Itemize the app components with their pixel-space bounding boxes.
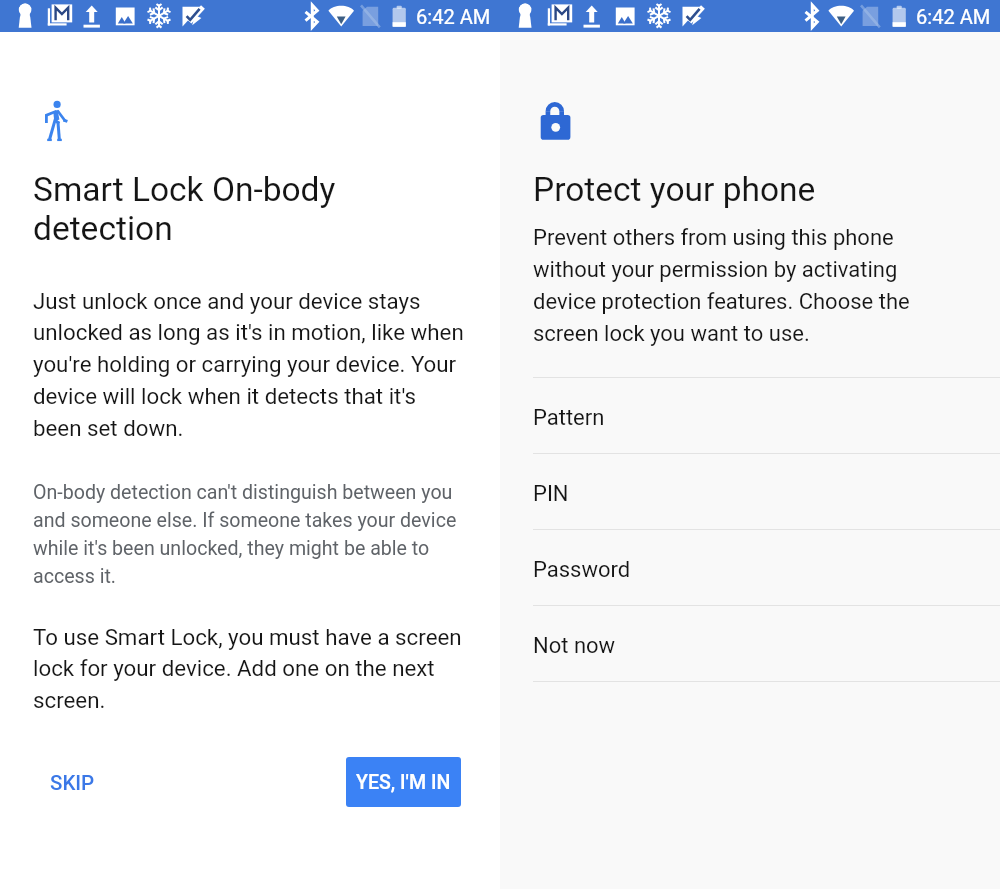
staticText: Just unlock once and your device stays u…	[33, 288, 464, 442]
button[interactable]: Pattern	[500, 378, 1000, 453]
staticText: Prevent others from using this phone wit…	[533, 225, 910, 346]
staticText: Pattern	[533, 405, 605, 431]
staticText: Protect your phone	[533, 170, 816, 209]
staticText: PIN	[533, 481, 569, 507]
button[interactable]: Not now	[500, 606, 1000, 681]
staticText: SKIP	[50, 771, 95, 795]
staticText: YES, I'M IN	[356, 771, 451, 794]
staticText: To use Smart Lock, you must have a scree…	[33, 624, 462, 714]
button[interactable]: PIN	[500, 454, 1000, 529]
staticText: Password	[533, 557, 631, 583]
staticText: Smart Lock On-body detection	[33, 170, 336, 248]
button[interactable]: YES, I'M IN	[346, 757, 461, 807]
other: Screen lock	[540, 102, 572, 141]
staticText: 6:42 AM	[416, 5, 491, 29]
staticText: Not now	[533, 633, 616, 659]
staticText: 6:42 AM	[916, 5, 991, 29]
button[interactable]: Password	[500, 530, 1000, 605]
button[interactable]: SKIP	[34, 763, 111, 803]
staticText: On-body detection can't distinguish betw…	[33, 481, 457, 588]
other: On-body detection	[42, 99, 69, 144]
